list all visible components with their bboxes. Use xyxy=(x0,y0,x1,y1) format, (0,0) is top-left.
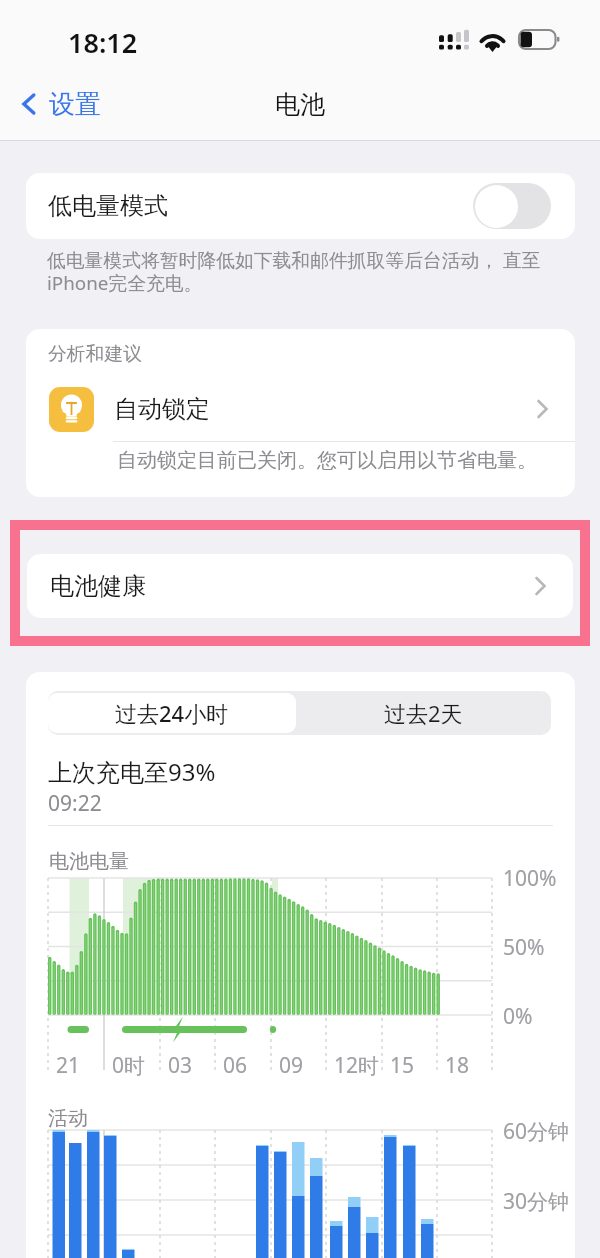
staticText: 100% xyxy=(503,864,557,893)
staticText: 分析和建议 xyxy=(48,342,142,366)
staticText: 0时 xyxy=(112,1051,146,1080)
button[interactable]: 电池健康 xyxy=(27,554,573,618)
staticText: 自动锁定目前已关闭。您可以启用以节省电量。 xyxy=(117,448,537,473)
staticText: 09 xyxy=(279,1051,304,1080)
button[interactable]: 自动锁定 xyxy=(26,378,575,440)
staticText: 21 xyxy=(56,1051,81,1080)
staticText: 电池健康 xyxy=(50,571,146,601)
staticText: iPhone完全充电。 xyxy=(47,270,203,296)
staticText: 电池 xyxy=(275,89,325,120)
staticText: 60分钟 xyxy=(503,1117,570,1146)
staticText: 15 xyxy=(390,1051,415,1080)
staticText: 12时 xyxy=(334,1051,380,1080)
button[interactable]: 低电量模式 xyxy=(26,173,575,239)
staticText: 过去2天 xyxy=(384,698,463,728)
staticText: 0% xyxy=(503,1002,533,1031)
button[interactable]: 过去24小时 xyxy=(48,693,296,733)
button[interactable]: Low Power Mode toggle xyxy=(473,183,551,229)
button[interactable]: 过去2天 xyxy=(298,693,549,733)
staticText: 低电量模式 xyxy=(48,191,168,221)
staticText: 活动 xyxy=(48,1106,88,1131)
staticText: 上次充电至93% xyxy=(48,755,216,788)
staticText: 设置 xyxy=(49,88,101,121)
staticText: 06 xyxy=(223,1051,248,1080)
staticText: 电池电量 xyxy=(49,849,129,874)
staticText: 18 xyxy=(445,1051,470,1080)
staticText: 18:12 xyxy=(68,24,138,61)
staticText: 30分钟 xyxy=(503,1187,570,1216)
staticText: 50% xyxy=(503,933,545,962)
staticText: 自动锁定 xyxy=(114,394,210,424)
staticText: 低电量模式将暂时降低如下载和邮件抓取等后台活动， 直至 xyxy=(47,247,541,273)
staticText: 09:22 xyxy=(48,789,102,818)
other: Back xyxy=(14,89,44,119)
button[interactable]: Back xyxy=(14,82,101,126)
staticText: 过去24小时 xyxy=(115,698,229,728)
staticText: 03 xyxy=(168,1051,193,1080)
